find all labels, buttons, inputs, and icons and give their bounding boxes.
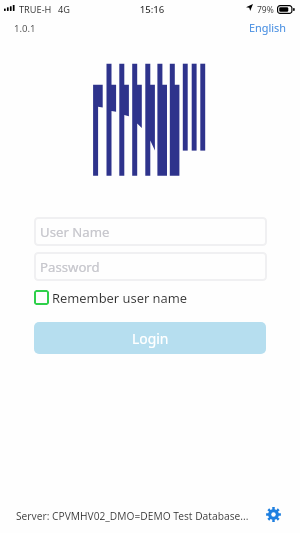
- staticText: TRUE-H: [19, 3, 52, 16]
- staticText: Login: [132, 329, 169, 348]
- staticText: 4G: [58, 3, 70, 16]
- staticText: 79%: [257, 4, 274, 16]
- staticText: Remember user name: [52, 289, 188, 306]
- button[interactable]: Settings: [263, 504, 284, 525]
- staticText: User Name: [40, 223, 110, 241]
- staticText: 1.0.1: [14, 22, 36, 35]
- button[interactable]: Remember user name: [34, 289, 188, 306]
- staticText: 15:16: [2, 3, 300, 16]
- button[interactable]: User Name: [34, 217, 267, 246]
- button[interactable]: Login: [34, 322, 266, 354]
- staticText: English: [249, 20, 287, 35]
- staticText: Password: [40, 258, 100, 276]
- button[interactable]: English: [249, 20, 287, 35]
- staticText: Server: CPVMHV02_DMO=DEMO Test Database.…: [16, 509, 249, 523]
- button[interactable]: Password: [34, 252, 267, 281]
